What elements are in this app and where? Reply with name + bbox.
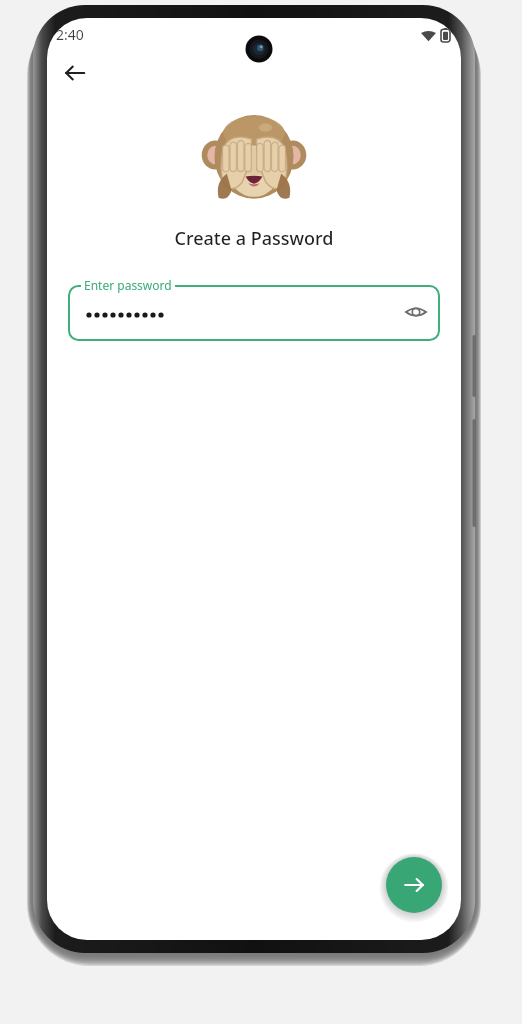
- button[interactable]: [68, 285, 440, 341]
- staticText: Create a Password: [47, 226, 461, 251]
- staticText: Enter password: [84, 277, 172, 293]
- button[interactable]: Continue: [386, 857, 442, 913]
- staticText: 2:40: [56, 25, 84, 44]
- button[interactable]: Back: [55, 53, 95, 93]
- button[interactable]: Show password: [398, 294, 434, 330]
